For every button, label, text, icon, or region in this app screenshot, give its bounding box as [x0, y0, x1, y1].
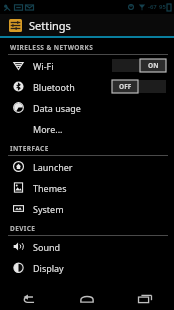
staticText: More... — [33, 123, 166, 135]
staticText: Bluetooth — [33, 81, 112, 93]
button[interactable]: Data usage — [0, 97, 174, 118]
staticText: OFF — [119, 82, 132, 91]
staticText: System — [33, 203, 166, 215]
button[interactable]: More... — [0, 118, 174, 139]
staticText: Display — [33, 262, 166, 274]
staticText: Settings — [29, 18, 71, 33]
button[interactable]: Settings — [0, 14, 174, 36]
staticText: Sound — [33, 241, 166, 253]
button[interactable]: Themes — [0, 177, 174, 198]
button[interactable]: Bluetooth — [0, 76, 174, 97]
button[interactable]: Display — [0, 257, 174, 278]
staticText: WIRELESS & NETWORKS — [10, 43, 94, 52]
staticText: Launcher — [33, 161, 166, 173]
button[interactable]: Wi-Fi — [0, 55, 174, 76]
button[interactable]: Sound — [0, 236, 174, 257]
button[interactable]: Launcher — [0, 156, 174, 177]
staticText: 95 — [159, 3, 166, 11]
button[interactable]: Recents — [116, 288, 174, 310]
button[interactable]: System — [0, 198, 174, 219]
button[interactable]: Back — [0, 288, 58, 310]
staticText: INTERFACE — [10, 144, 49, 153]
staticText: ON — [148, 61, 159, 70]
button[interactable]: Toggle on — [112, 59, 166, 72]
button[interactable]: Toggle off — [112, 80, 166, 93]
staticText: -67 — [148, 3, 157, 11]
button[interactable]: Home — [58, 288, 116, 310]
staticText: Wi-Fi — [33, 60, 112, 72]
staticText: Data usage — [33, 102, 166, 114]
staticText: Themes — [33, 182, 166, 194]
staticText: DEVICE — [10, 224, 36, 233]
